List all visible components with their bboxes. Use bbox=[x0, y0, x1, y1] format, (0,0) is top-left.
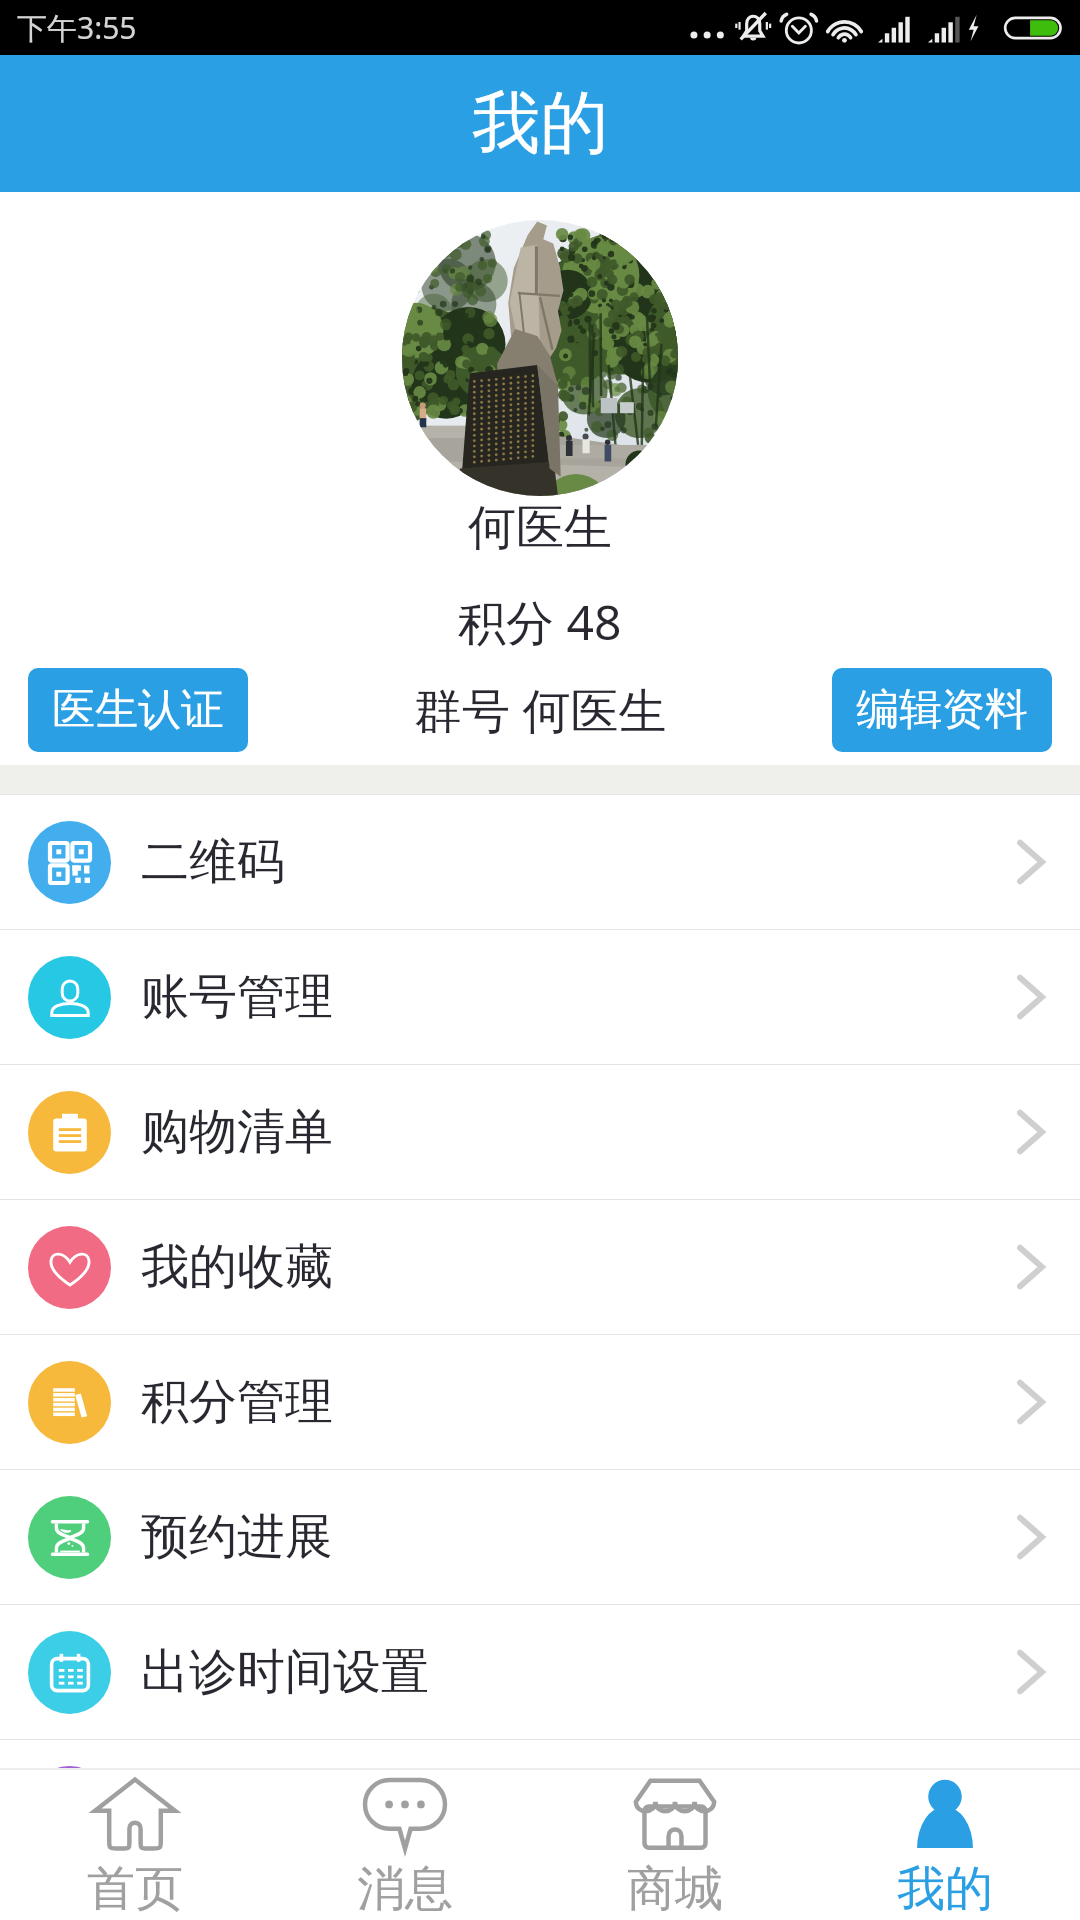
staticText: 其他 bbox=[141, 1777, 237, 1837]
staticText: 二维码 bbox=[141, 832, 285, 892]
button[interactable]: 购物清单 bbox=[0, 1065, 1080, 1199]
staticText: 编辑资料 bbox=[856, 683, 1028, 737]
staticText: 我的收藏 bbox=[141, 1237, 333, 1297]
staticText: 出诊时间设置 bbox=[141, 1642, 429, 1702]
staticText: 何医生 bbox=[468, 498, 612, 558]
staticText: 首页 bbox=[87, 1859, 183, 1919]
staticText: 账号管理 bbox=[141, 967, 333, 1027]
button[interactable]: 预约进展 bbox=[0, 1470, 1080, 1604]
staticText: 商城 bbox=[627, 1859, 723, 1919]
button[interactable]: 首页 bbox=[0, 1770, 270, 1919]
staticText: 消息 bbox=[357, 1859, 453, 1919]
button[interactable]: 商城 bbox=[540, 1770, 810, 1919]
button[interactable]: 我的 bbox=[810, 1770, 1080, 1919]
staticText: 预约进展 bbox=[141, 1507, 333, 1567]
button[interactable]: 二维码 bbox=[0, 795, 1080, 929]
staticText: 下午3:55 bbox=[17, 7, 137, 48]
button[interactable]: 医生认证 bbox=[28, 668, 248, 752]
button[interactable]: 出诊时间设置 bbox=[0, 1605, 1080, 1739]
staticText: 我的 bbox=[472, 81, 608, 167]
button[interactable]: 其他 bbox=[0, 1740, 1080, 1874]
staticText: 群号 何医生 bbox=[414, 677, 667, 743]
button[interactable]: Profile photo bbox=[402, 220, 678, 496]
staticText: 医生认证 bbox=[52, 683, 224, 737]
button[interactable]: 消息 bbox=[270, 1770, 540, 1919]
staticText: 积分 48 bbox=[458, 589, 622, 655]
staticText: 购物清单 bbox=[141, 1102, 333, 1162]
button[interactable]: 账号管理 bbox=[0, 930, 1080, 1064]
button[interactable]: 编辑资料 bbox=[832, 668, 1052, 752]
staticText: 我的 bbox=[897, 1859, 993, 1919]
staticText: 积分管理 bbox=[141, 1372, 333, 1432]
button[interactable]: 积分管理 bbox=[0, 1335, 1080, 1469]
button[interactable]: 我的收藏 bbox=[0, 1200, 1080, 1334]
